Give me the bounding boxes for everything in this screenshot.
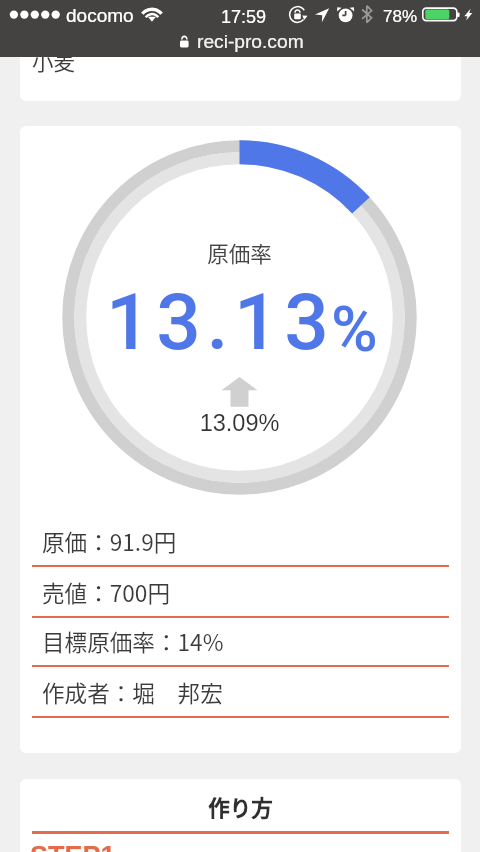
staticText: 原価：91.9円 [42, 525, 177, 558]
button[interactable]: Address bar reci-pro.com [0, 28, 480, 57]
staticText: 作成者：堀 邦宏 [42, 676, 223, 709]
staticText: 13.13 [106, 276, 335, 368]
button[interactable]: 目標原価率：14% [32, 621, 449, 667]
button[interactable]: 売値：700円 [32, 572, 449, 618]
staticText: reci-pro.com [197, 31, 304, 52]
staticText: 目標原価率：14% [42, 625, 224, 658]
staticText: 78% [383, 7, 418, 26]
staticText: docomo [66, 5, 134, 26]
staticText: STEP1 [30, 841, 116, 852]
staticText: 13.09% [62, 410, 417, 436]
staticText: % [331, 292, 378, 366]
staticText: 売値：700円 [42, 576, 170, 609]
button[interactable]: 作成者：堀 邦宏 [32, 672, 449, 718]
button[interactable]: 原価：91.9円 [32, 521, 449, 567]
button[interactable]: 小麦 [20, 26, 461, 101]
staticText: 作り方 [20, 791, 461, 822]
staticText: 小麦 [32, 45, 76, 76]
staticText: 原価率 [62, 237, 417, 268]
staticText: 17:59 [221, 7, 267, 27]
